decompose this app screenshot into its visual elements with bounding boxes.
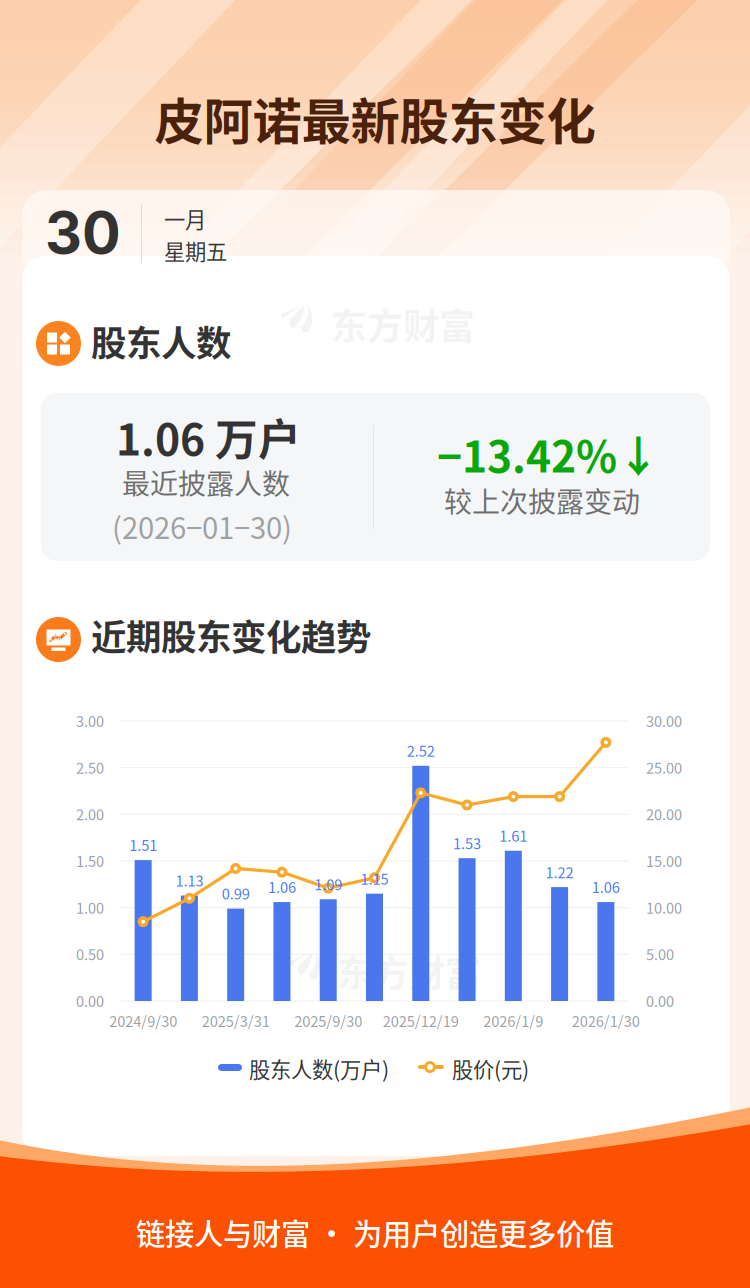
staticText: 皮阿诺最新股东变化	[154, 82, 595, 154]
staticText: 链接人与财富 · 为用户创造更多价值	[136, 1211, 614, 1253]
staticText: 2025/9/30	[294, 1010, 362, 1031]
staticText: 1.00	[76, 897, 104, 918]
staticText: 30	[45, 198, 121, 267]
staticText: 30.00	[646, 710, 682, 731]
staticText: 3.00	[76, 710, 104, 731]
staticText: 1.61	[499, 825, 527, 846]
staticText: 星期五	[164, 235, 227, 266]
staticText: 0.00	[76, 990, 104, 1011]
staticText: 15.00	[646, 850, 682, 871]
staticText: 东方财富	[331, 298, 475, 350]
staticText: 1.51	[129, 834, 157, 855]
staticText: 1.22	[546, 861, 574, 882]
staticText: 2.52	[407, 740, 435, 761]
staticText: (2026−01−30)	[112, 505, 292, 547]
staticText: 东方财富	[337, 945, 481, 997]
staticText: 较上次披露变动	[444, 480, 640, 520]
staticText: 最近披露人数	[122, 462, 290, 502]
staticText: 2026/1/9	[483, 1010, 543, 1031]
staticText: 2025/12/19	[383, 1010, 459, 1031]
staticText: 0.50	[76, 943, 104, 964]
staticText: 1.06	[592, 876, 620, 897]
staticText: −13.42%↓	[437, 423, 660, 485]
staticText: 1.06 万户	[116, 406, 301, 468]
staticText: 0.00	[646, 990, 674, 1011]
staticText: 一月	[164, 203, 206, 234]
staticText: 股东人数(万户)	[249, 1053, 389, 1084]
staticText: 1.09	[314, 873, 342, 894]
staticText: 近期股东变化趋势	[91, 609, 371, 660]
staticText: 2025/3/31	[202, 1010, 270, 1031]
staticText: 1.53	[453, 832, 481, 853]
staticText: 1.50	[76, 850, 104, 871]
staticText: 1.15	[360, 868, 388, 889]
staticText: 20.00	[646, 803, 682, 824]
staticText: 2024/9/30	[109, 1010, 177, 1031]
staticText: 股价(元)	[452, 1053, 529, 1084]
staticText: 10.00	[646, 897, 682, 918]
staticText: 2.00	[76, 803, 104, 824]
staticText: 1.06	[268, 876, 296, 897]
staticText: 0.99	[222, 883, 250, 904]
staticText: 25.00	[646, 757, 682, 778]
staticText: 2.50	[76, 757, 104, 778]
staticText: 2026/1/30	[572, 1010, 640, 1031]
staticText: 股东人数	[91, 315, 231, 366]
staticText: 5.00	[646, 943, 674, 964]
staticText: 1.13	[175, 869, 203, 891]
